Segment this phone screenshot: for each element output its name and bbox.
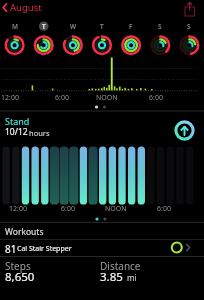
staticText: 10/12 <box>5 126 28 138</box>
staticText: Distance <box>100 259 141 273</box>
staticText: S <box>187 22 191 31</box>
staticText: 6:00 <box>157 204 171 214</box>
button[interactable] <box>180 0 204 18</box>
staticText: M <box>12 22 18 31</box>
staticText: 12:00 <box>9 204 27 214</box>
staticText: Steps <box>5 259 31 273</box>
staticText: NOON <box>105 204 127 214</box>
button[interactable] <box>29 16 58 58</box>
staticText: 8,650 <box>5 269 35 285</box>
staticText: Workouts <box>5 226 44 238</box>
staticText: W <box>70 22 77 31</box>
staticText: 6:00 <box>149 93 163 103</box>
button[interactable] <box>0 240 204 256</box>
button[interactable] <box>0 112 204 142</box>
button[interactable] <box>146 16 175 58</box>
staticText: 12:00 <box>1 93 19 103</box>
button[interactable] <box>175 16 204 58</box>
staticText: mi <box>127 272 137 283</box>
staticText: hours <box>29 128 50 138</box>
staticText: August <box>10 1 42 14</box>
button[interactable] <box>88 16 117 58</box>
button[interactable] <box>0 16 29 58</box>
staticText: F <box>129 22 133 31</box>
staticText: T <box>42 22 46 31</box>
staticText: 6:00 <box>61 204 75 214</box>
staticText: S <box>158 22 162 31</box>
staticText: 81 <box>5 242 17 256</box>
staticText: 3.85 <box>100 269 123 285</box>
button[interactable] <box>58 16 87 58</box>
staticText: Stand <box>5 115 30 127</box>
staticText: Cal Stair Stepper <box>17 244 72 254</box>
button[interactable] <box>117 16 146 58</box>
button[interactable] <box>0 0 50 15</box>
staticText: 6:00 <box>55 93 69 103</box>
staticText: T <box>100 22 104 31</box>
staticText: NOON <box>96 93 118 103</box>
